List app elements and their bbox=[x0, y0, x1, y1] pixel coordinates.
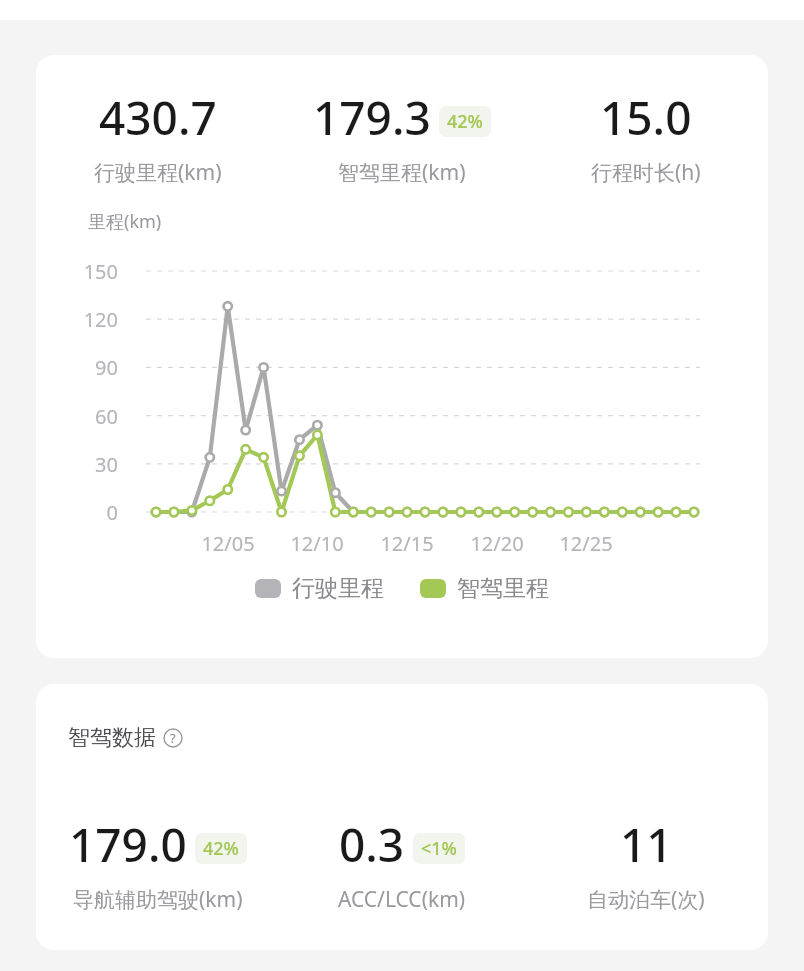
button[interactable]: 11 bbox=[524, 813, 768, 914]
button[interactable]: 帮助说明 bbox=[163, 728, 183, 748]
staticText: 自动泊车(次) bbox=[587, 885, 705, 914]
button[interactable]: 430.7 bbox=[36, 86, 280, 187]
staticText: 179.0 bbox=[69, 813, 187, 876]
staticText: 60 bbox=[36, 403, 118, 430]
staticText: 12/05 bbox=[183, 530, 273, 557]
staticText: 行程时长(h) bbox=[591, 158, 701, 187]
staticText: ? bbox=[170, 729, 176, 747]
button[interactable]: 179.3 bbox=[280, 86, 524, 187]
staticText: 11 bbox=[620, 813, 673, 876]
button[interactable]: 0.3 bbox=[280, 813, 524, 914]
staticText: 12/25 bbox=[541, 530, 631, 557]
staticText: 120 bbox=[36, 306, 118, 333]
staticText: 12/10 bbox=[272, 530, 362, 557]
button[interactable]: 行驶里程 bbox=[255, 574, 384, 603]
staticText: 智驾数据 bbox=[68, 724, 156, 752]
staticText: 15.0 bbox=[600, 86, 692, 149]
staticText: 179.3 bbox=[313, 86, 431, 149]
staticText: 里程(km) bbox=[88, 209, 162, 234]
staticText: 42% bbox=[203, 836, 239, 861]
staticText: 智驾里程 bbox=[457, 574, 549, 603]
staticText: 42% bbox=[447, 109, 483, 134]
staticText: <1% bbox=[421, 836, 457, 861]
staticText: 150 bbox=[36, 258, 118, 285]
staticText: 12/20 bbox=[452, 530, 542, 557]
staticText: 行驶里程 bbox=[292, 574, 384, 603]
staticText: 0 bbox=[36, 499, 118, 526]
button[interactable]: 智驾里程 bbox=[420, 574, 549, 603]
staticText: 12/15 bbox=[362, 530, 452, 557]
staticText: 智驾里程(km) bbox=[338, 158, 466, 187]
staticText: ACC/LCC(km) bbox=[338, 885, 466, 914]
staticText: 行驶里程(km) bbox=[94, 158, 222, 187]
staticText: 30 bbox=[36, 451, 118, 478]
staticText: 90 bbox=[36, 354, 118, 381]
button[interactable]: 179.0 bbox=[36, 813, 280, 914]
button[interactable]: 智驾数据 bbox=[68, 724, 183, 752]
staticText: 430.7 bbox=[99, 86, 217, 149]
staticText: 0.3 bbox=[339, 813, 405, 876]
button[interactable]: 15.0 bbox=[524, 86, 768, 187]
staticText: 导航辅助驾驶(km) bbox=[73, 885, 243, 914]
